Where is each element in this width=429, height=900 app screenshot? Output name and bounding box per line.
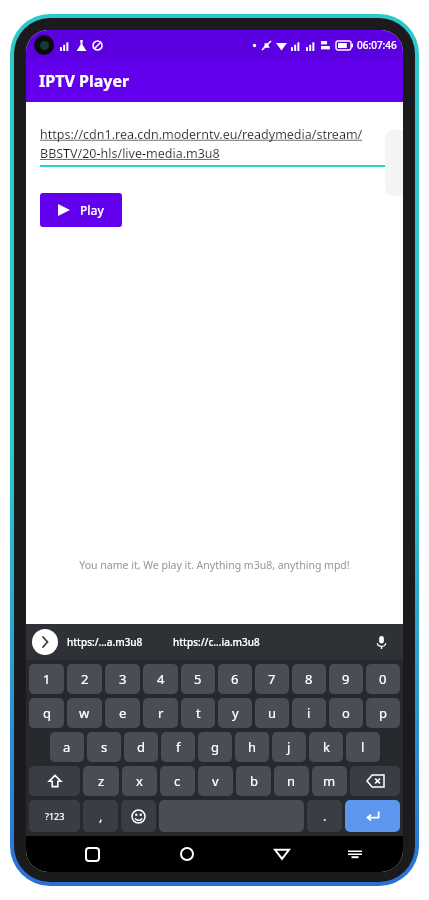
button[interactable]: u bbox=[255, 698, 289, 728]
button[interactable]: . bbox=[307, 800, 342, 832]
button[interactable]: t bbox=[181, 698, 215, 728]
staticText: k bbox=[323, 738, 330, 756]
staticText: g bbox=[211, 738, 219, 756]
staticText: 06:07:46 bbox=[357, 38, 397, 52]
button[interactable]: Voice input bbox=[369, 630, 393, 654]
staticText: i bbox=[307, 704, 311, 722]
staticText: d bbox=[137, 738, 145, 756]
button[interactable]: https://cdn1.rea.cdn.moderntv.eu/readyme… bbox=[40, 126, 389, 167]
staticText: 8 bbox=[305, 670, 313, 688]
staticText: , bbox=[99, 807, 103, 825]
button[interactable]: c bbox=[160, 766, 195, 796]
staticText: 9 bbox=[342, 670, 350, 688]
staticText: a bbox=[63, 738, 71, 756]
button[interactable]: 0 bbox=[366, 664, 400, 694]
button[interactable]: a bbox=[50, 732, 84, 762]
staticText: IPTV Player bbox=[39, 70, 130, 92]
staticText: u bbox=[268, 704, 277, 722]
button[interactable]: e bbox=[105, 698, 140, 728]
button[interactable]: Recents bbox=[75, 837, 109, 871]
staticText: 3 bbox=[119, 670, 127, 688]
staticText: z bbox=[98, 772, 105, 790]
button[interactable]: w bbox=[67, 698, 102, 728]
staticText: You name it, We play it. Anything m3u8, … bbox=[40, 558, 389, 572]
button[interactable]: l bbox=[346, 732, 380, 762]
button[interactable]: Enter bbox=[345, 800, 400, 832]
staticText: l bbox=[361, 738, 365, 756]
staticText: 7 bbox=[268, 670, 276, 688]
button[interactable]: ?123 bbox=[29, 800, 80, 832]
button[interactable]: x bbox=[122, 766, 157, 796]
button[interactable]: n bbox=[274, 766, 309, 796]
staticText: b bbox=[250, 772, 258, 790]
staticText: e bbox=[119, 704, 127, 722]
button[interactable]: o bbox=[329, 698, 363, 728]
button[interactable]: 3 bbox=[105, 664, 140, 694]
staticText: s bbox=[101, 738, 108, 756]
staticText: q bbox=[43, 704, 51, 722]
button[interactable]: Switch keyboard bbox=[338, 837, 372, 871]
button[interactable]: y bbox=[218, 698, 252, 728]
button[interactable]: https://c...ia.m3u8 bbox=[170, 631, 263, 653]
button[interactable]: f bbox=[161, 732, 195, 762]
button[interactable]: Back bbox=[265, 837, 299, 871]
button[interactable]: b bbox=[236, 766, 271, 796]
button[interactable]: d bbox=[124, 732, 158, 762]
button[interactable]: 5 bbox=[181, 664, 215, 694]
button[interactable]: s bbox=[87, 732, 121, 762]
button[interactable]: Home bbox=[170, 837, 204, 871]
button[interactable]: z bbox=[83, 766, 119, 796]
staticText: w bbox=[79, 704, 90, 722]
staticText: https://c...ia.m3u8 bbox=[173, 635, 260, 649]
staticText: t bbox=[196, 704, 201, 722]
staticText: 5 bbox=[194, 670, 202, 688]
staticText: p bbox=[379, 704, 387, 722]
staticText: o bbox=[342, 704, 350, 722]
button[interactable]: p bbox=[366, 698, 400, 728]
button[interactable]: 9 bbox=[329, 664, 363, 694]
staticText: 1 bbox=[43, 670, 51, 688]
staticText: r bbox=[158, 704, 164, 722]
staticText: 2 bbox=[81, 670, 89, 688]
button[interactable]: 6 bbox=[218, 664, 252, 694]
button[interactable]: , bbox=[83, 800, 118, 832]
staticText: https:/...a.m3u8 bbox=[67, 635, 143, 649]
button[interactable]: r bbox=[143, 698, 178, 728]
staticText: . bbox=[323, 807, 327, 825]
button[interactable]: g bbox=[198, 732, 232, 762]
staticText: 6 bbox=[231, 670, 239, 688]
button[interactable]: k bbox=[309, 732, 343, 762]
staticText: f bbox=[176, 738, 181, 756]
staticText: j bbox=[287, 738, 291, 756]
staticText: h bbox=[248, 738, 257, 756]
button[interactable]: Backspace bbox=[350, 766, 400, 796]
staticText: 0 bbox=[379, 670, 387, 688]
staticText: y bbox=[232, 704, 239, 722]
button[interactable]: 1 bbox=[29, 664, 64, 694]
button[interactable]: 2 bbox=[67, 664, 102, 694]
staticText: v bbox=[212, 772, 219, 790]
staticText: x bbox=[136, 772, 143, 790]
staticText: m bbox=[323, 772, 336, 790]
staticText: c bbox=[174, 772, 181, 790]
button[interactable]: Expand suggestions bbox=[32, 629, 58, 655]
button[interactable]: Play bbox=[40, 193, 122, 227]
button[interactable]: 8 bbox=[292, 664, 326, 694]
button[interactable]: 4 bbox=[143, 664, 178, 694]
button[interactable]: q bbox=[29, 698, 64, 728]
button[interactable]: Emoji bbox=[121, 800, 156, 832]
staticText: n bbox=[287, 772, 296, 790]
button[interactable]: https:/...a.m3u8 bbox=[64, 631, 146, 653]
button[interactable]: 7 bbox=[255, 664, 289, 694]
button[interactable]: h bbox=[235, 732, 269, 762]
button[interactable]: i bbox=[292, 698, 326, 728]
button[interactable]: m bbox=[312, 766, 347, 796]
staticText: https://cdn1.rea.cdn.moderntv.eu/readyme… bbox=[40, 126, 389, 162]
staticText: ?123 bbox=[45, 810, 65, 822]
staticText: 4 bbox=[157, 670, 165, 688]
button[interactable]: v bbox=[198, 766, 233, 796]
button[interactable]: Shift bbox=[29, 766, 80, 796]
button[interactable]: j bbox=[272, 732, 306, 762]
staticText: Play bbox=[80, 202, 104, 218]
